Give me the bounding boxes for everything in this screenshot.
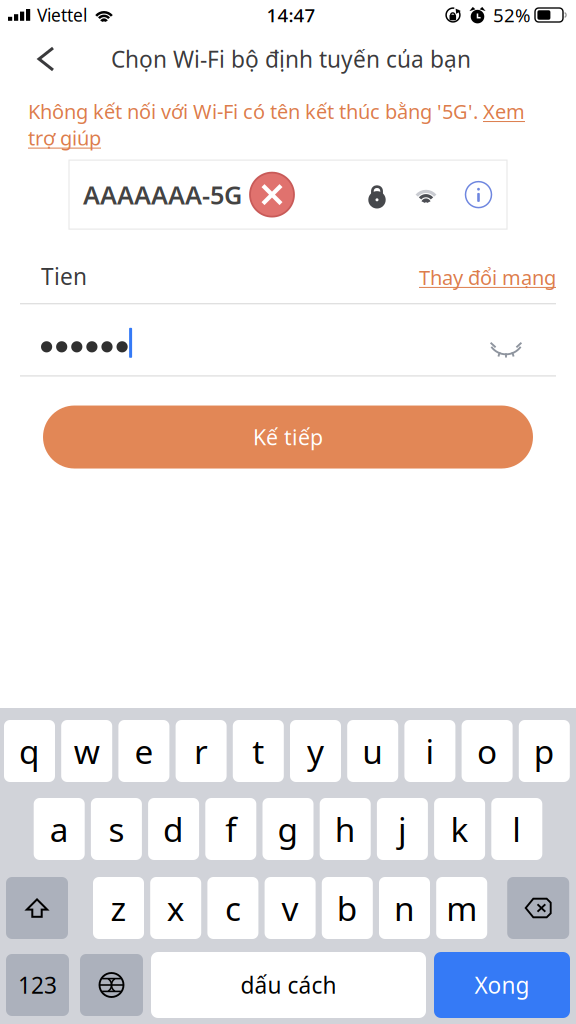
staticText: a xyxy=(50,807,69,851)
button[interactable]: Xong xyxy=(434,952,570,1018)
button[interactable]: p xyxy=(519,720,570,782)
staticText: t xyxy=(252,729,264,773)
button[interactable]: Kế tiếp xyxy=(43,405,533,468)
button[interactable]: i xyxy=(404,720,455,782)
staticText: q xyxy=(19,729,40,773)
button[interactable]: x xyxy=(150,877,201,939)
staticText: AAAAAAA-5G xyxy=(83,178,242,211)
button[interactable]: u xyxy=(347,720,398,782)
staticText: p xyxy=(534,729,555,773)
staticText: Không kết nối với Wi-Fi có tên kết thúc … xyxy=(28,98,525,151)
staticText: h xyxy=(335,807,356,851)
button[interactable]: z xyxy=(93,877,144,939)
staticText: 123 xyxy=(18,970,57,1000)
staticText: z xyxy=(110,886,126,930)
button[interactable]: m xyxy=(436,877,487,939)
staticText: o xyxy=(477,729,497,773)
button[interactable]: c xyxy=(207,877,258,939)
staticText: w xyxy=(74,729,100,773)
button[interactable]: h xyxy=(320,798,371,860)
button[interactable]: s xyxy=(91,798,142,860)
staticText: 52% xyxy=(493,3,531,27)
staticText: r xyxy=(194,729,208,773)
staticText: y xyxy=(307,729,324,773)
button[interactable]: Thay đổi mạng xyxy=(419,264,556,290)
button[interactable]: y xyxy=(290,720,341,782)
button[interactable]: dấu cách xyxy=(151,952,426,1018)
staticText: dấu cách xyxy=(240,970,336,1000)
button[interactable]: e xyxy=(118,720,169,782)
staticText: 14:47 xyxy=(266,3,315,27)
button[interactable]: f xyxy=(205,798,256,860)
staticText: v xyxy=(282,886,299,930)
button[interactable] xyxy=(6,877,68,939)
staticText: n xyxy=(394,886,415,930)
button[interactable]: Network information xyxy=(465,181,492,208)
staticText: s xyxy=(108,807,124,851)
button[interactable]: 123 xyxy=(6,954,69,1016)
staticText: Viettel xyxy=(37,3,87,26)
staticText: k xyxy=(451,807,469,851)
staticText: Kế tiếp xyxy=(253,423,323,451)
staticText: f xyxy=(225,807,236,851)
button[interactable] xyxy=(507,877,569,939)
button[interactable]: t xyxy=(233,720,284,782)
staticText: i xyxy=(425,729,434,773)
button[interactable]: o xyxy=(462,720,513,782)
button[interactable]: Clear xyxy=(250,173,294,217)
staticText: b xyxy=(337,886,358,930)
button[interactable]: k xyxy=(434,798,485,860)
button[interactable]: Back xyxy=(23,36,69,82)
button[interactable]: d xyxy=(148,798,199,860)
button[interactable]: l xyxy=(491,798,542,860)
button[interactable]: v xyxy=(265,877,316,939)
button[interactable]: j xyxy=(377,798,428,860)
button[interactable]: n xyxy=(379,877,430,939)
button[interactable]: a xyxy=(34,798,85,860)
staticText: u xyxy=(362,729,383,773)
button[interactable]: r xyxy=(176,720,227,782)
staticText: m xyxy=(446,886,477,930)
staticText: c xyxy=(225,886,241,930)
button[interactable]: w xyxy=(61,720,112,782)
staticText: x xyxy=(167,886,185,930)
staticText: g xyxy=(277,807,298,851)
button[interactable]: g xyxy=(262,798,313,860)
button[interactable]: b xyxy=(322,877,373,939)
staticText: Tien xyxy=(41,261,87,291)
staticText: l xyxy=(512,807,521,851)
staticText: j xyxy=(398,807,407,851)
staticText: d xyxy=(163,807,184,851)
staticText: Thay đổi mạng xyxy=(419,264,556,290)
staticText: e xyxy=(134,729,153,773)
button[interactable]: Show password xyxy=(490,331,522,348)
staticText: Xong xyxy=(474,970,529,1000)
staticText: Chọn Wi-Fi bộ định tuyến của bạn xyxy=(111,44,471,74)
button[interactable] xyxy=(80,954,143,1016)
button[interactable]: q xyxy=(4,720,55,782)
